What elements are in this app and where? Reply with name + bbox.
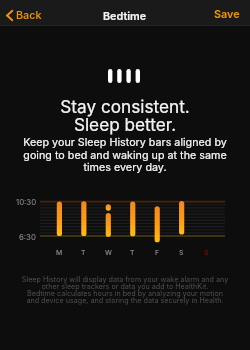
staticText: S [179,248,184,256]
staticText: Keep your Sleep History bars aligned by … [0,136,250,174]
staticText: Save [214,8,240,21]
staticText: Stay consistent. Sleep better. [0,96,250,135]
staticText: F [155,248,160,256]
staticText: M [56,248,63,256]
staticText: T [130,248,135,256]
staticText: 6:30 [19,232,36,241]
staticText: Back [16,9,42,22]
staticText: S [204,248,209,256]
staticText: T [81,248,86,256]
staticText: W [105,248,112,256]
staticText: Sleep History will display data from you… [0,275,250,305]
button[interactable]: Back [0,7,48,24]
staticText: Bedtime [103,10,147,23]
staticText: 10:30 [16,197,37,206]
button[interactable]: Save [204,6,250,23]
